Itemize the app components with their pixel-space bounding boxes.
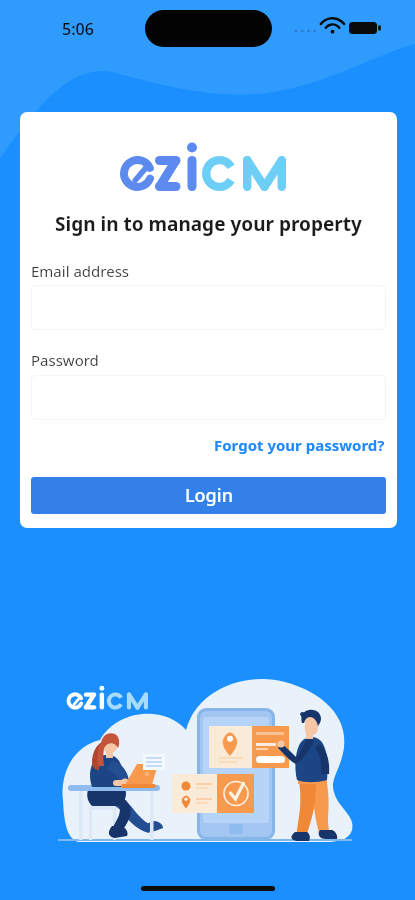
button[interactable]: Forgot your password? (214, 435, 385, 455)
staticText: Email address (31, 261, 130, 281)
staticText: 5:06 (62, 18, 94, 40)
button[interactable]: Login (31, 477, 386, 514)
staticText: Login (185, 483, 233, 508)
staticText: Password (31, 350, 99, 370)
staticText: Sign in to manage your property (55, 211, 362, 237)
staticText: Forgot your password? (214, 435, 385, 455)
